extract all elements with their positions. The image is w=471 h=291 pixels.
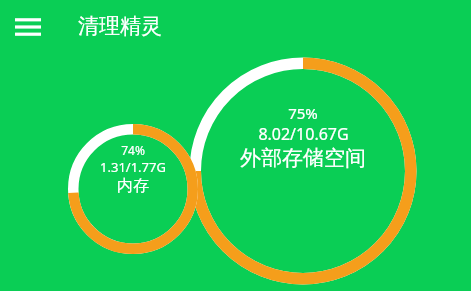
staticText: 1.31/1.77G bbox=[100, 158, 166, 176]
staticText: 8.02/10.67G bbox=[258, 123, 349, 145]
button[interactable]: Menu bbox=[6, 9, 50, 45]
staticText: 内存 bbox=[117, 176, 149, 196]
staticText: 75% bbox=[288, 103, 318, 123]
button[interactable]: 75% bbox=[188, 56, 418, 286]
button[interactable]: 74% bbox=[67, 123, 199, 255]
staticText: 74% bbox=[121, 142, 145, 158]
staticText: 外部存储空间 bbox=[240, 145, 366, 171]
staticText: 清理精灵 bbox=[78, 13, 162, 39]
